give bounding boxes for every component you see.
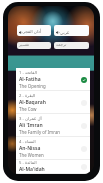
button[interactable]: 3 - آل عمران: [16, 114, 90, 137]
other: Download: [81, 146, 87, 152]
staticText: Ali 'Imran: [19, 122, 43, 129]
staticText: Al-Baqarah: [19, 99, 46, 106]
other: Play sound: [19, 31, 22, 34]
button[interactable]: Play sound: [54, 25, 89, 36]
button[interactable]: 1 - الفاتحة: [16, 68, 90, 91]
other: Download: [81, 164, 87, 170]
other: Play sound: [56, 31, 59, 34]
staticText: The Family of Imran: [19, 129, 61, 135]
staticText: 1 - الفاتحة: [19, 70, 37, 76]
staticText: 4 - النساء: [19, 139, 36, 145]
button[interactable]: Play sound: [17, 25, 51, 36]
staticText: The Cow: [19, 106, 37, 112]
other: Downloaded: [81, 77, 87, 83]
staticText: 3 - آل عمران: [19, 116, 42, 122]
staticText: تفسير: [19, 42, 30, 47]
button[interactable]: ترجمة: [54, 42, 89, 49]
staticText: 5 - المائدة: [19, 160, 37, 166]
other: Download: [81, 100, 87, 106]
other: Download: [81, 123, 87, 129]
staticText: The Women: [19, 152, 44, 158]
staticText: Al-Fatiha: [19, 76, 41, 83]
staticText: 2 - البقرة: [19, 93, 36, 99]
staticText: عربي: [60, 30, 70, 35]
button[interactable]: 4 - النساء: [16, 137, 90, 160]
button[interactable]: 2 - البقرة: [16, 91, 90, 114]
staticText: The Opening: [19, 83, 46, 89]
button[interactable]: 5 - المائدة: [16, 160, 90, 174]
staticText: أذان الفجر: [23, 29, 41, 35]
staticText: ترجمة: [56, 42, 67, 47]
staticText: An-Nissa: [19, 145, 41, 152]
staticText: Al-Ma'idah: [19, 166, 45, 173]
button[interactable]: تفسير: [17, 42, 51, 49]
